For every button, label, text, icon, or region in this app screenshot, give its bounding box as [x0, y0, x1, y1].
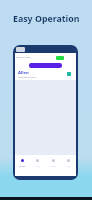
- button[interactable]: List: [30, 155, 45, 176]
- staticText: Chat: [51, 165, 56, 168]
- staticText: Allen: [18, 70, 29, 76]
- staticText: Easy Operation: [13, 13, 80, 25]
- staticText: List: [36, 165, 40, 168]
- button[interactable]: Me: [61, 155, 76, 176]
- button[interactable]: Search: [16, 47, 25, 52]
- button[interactable]: Add: [56, 56, 64, 60]
- staticText: Me: [67, 165, 71, 168]
- button[interactable]: Home: [15, 155, 30, 176]
- button[interactable]: Chat: [46, 155, 61, 176]
- staticText: Home: [19, 165, 26, 168]
- staticText: Search Utility: [16, 55, 31, 58]
- button[interactable]: [29, 63, 62, 68]
- staticText: description text: [18, 75, 36, 78]
